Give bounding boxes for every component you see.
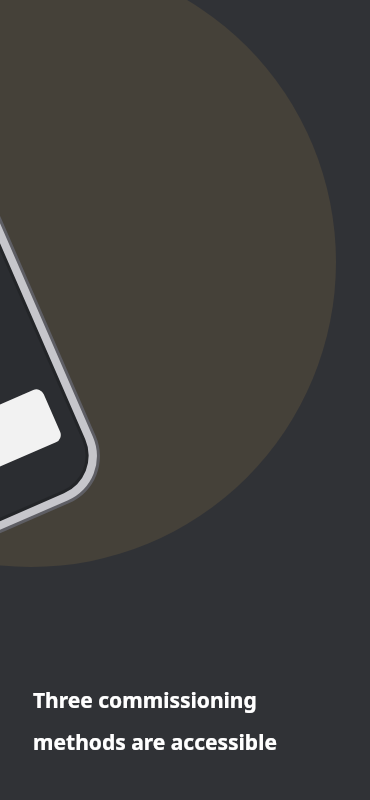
staticText: Three commissioning: [33, 686, 257, 715]
staticText: methods are accessible: [33, 728, 277, 757]
